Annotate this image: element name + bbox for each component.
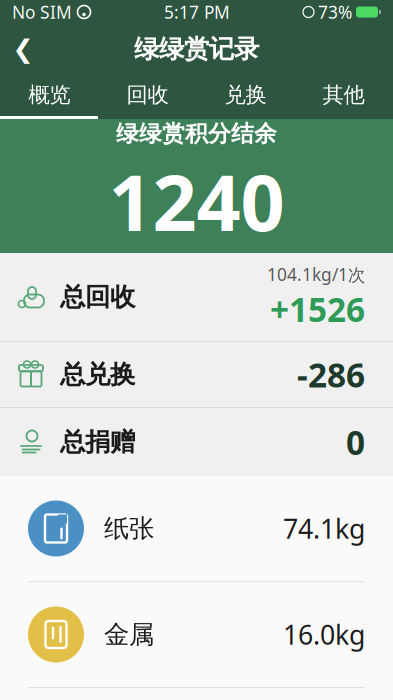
button[interactable]: 其他 xyxy=(294,74,392,116)
button[interactable]: 总捐赠 xyxy=(0,408,393,476)
button[interactable]: 总兑换 xyxy=(0,342,393,407)
staticText: 纸张 xyxy=(104,513,154,544)
staticText: 总回收 xyxy=(60,281,135,312)
staticText: No SIM xyxy=(12,0,72,23)
staticText: +1526 xyxy=(270,287,365,331)
button[interactable]: Back xyxy=(0,24,46,74)
staticText: 总捐赠 xyxy=(60,426,135,457)
staticText: 兑换 xyxy=(224,82,266,108)
staticText: 绿绿赏记录 xyxy=(134,33,259,64)
button[interactable]: 回收 xyxy=(98,74,196,116)
staticText: 5:17 PM xyxy=(164,0,230,23)
staticText: 回收 xyxy=(126,82,168,108)
button[interactable]: 概览 xyxy=(0,74,98,116)
staticText: 总兑换 xyxy=(60,359,135,390)
staticText: 绿绿赏积分结余 xyxy=(116,120,277,147)
staticText: 104.1kg/1次 xyxy=(267,263,365,286)
staticText: 74.1kg xyxy=(283,511,365,546)
staticText: 概览 xyxy=(28,82,70,108)
staticText: 0 xyxy=(346,420,365,464)
staticText: 1240 xyxy=(108,150,284,252)
button[interactable]: 纸张 xyxy=(0,476,393,581)
staticText: ❮ xyxy=(12,35,33,63)
staticText: -286 xyxy=(297,352,365,397)
button[interactable]: 金属 xyxy=(0,582,393,687)
staticText: 金属 xyxy=(104,619,154,650)
button[interactable]: 总回收 xyxy=(0,253,393,341)
button[interactable]: 兑换 xyxy=(196,74,294,116)
staticText: 其他 xyxy=(322,82,364,108)
staticText: 16.0kg xyxy=(283,617,365,652)
staticText: 73% xyxy=(318,0,352,23)
